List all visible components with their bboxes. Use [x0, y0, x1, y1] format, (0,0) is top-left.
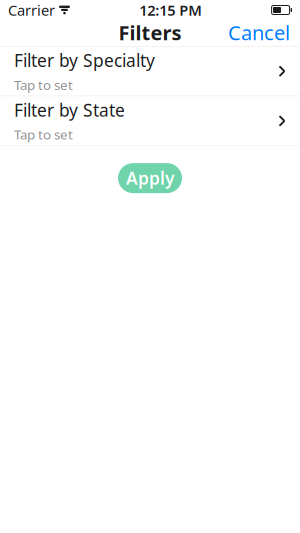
button[interactable]: Filter by Specialty — [0, 47, 300, 96]
staticText: Filter by State — [14, 98, 125, 121]
staticText: Carrier — [8, 0, 55, 20]
staticText: 12:15 PM — [139, 0, 202, 20]
staticText: Tap to set — [14, 126, 73, 143]
button[interactable]: Apply — [118, 163, 182, 193]
staticText: Tap to set — [14, 76, 73, 94]
button[interactable]: Filter by State — [0, 96, 300, 145]
staticText: Filter by Specialty — [14, 49, 155, 72]
staticText: Apply — [126, 167, 174, 190]
staticText: Filters — [118, 19, 181, 46]
staticText: Cancel — [228, 19, 290, 46]
button[interactable]: Cancel — [218, 13, 300, 52]
